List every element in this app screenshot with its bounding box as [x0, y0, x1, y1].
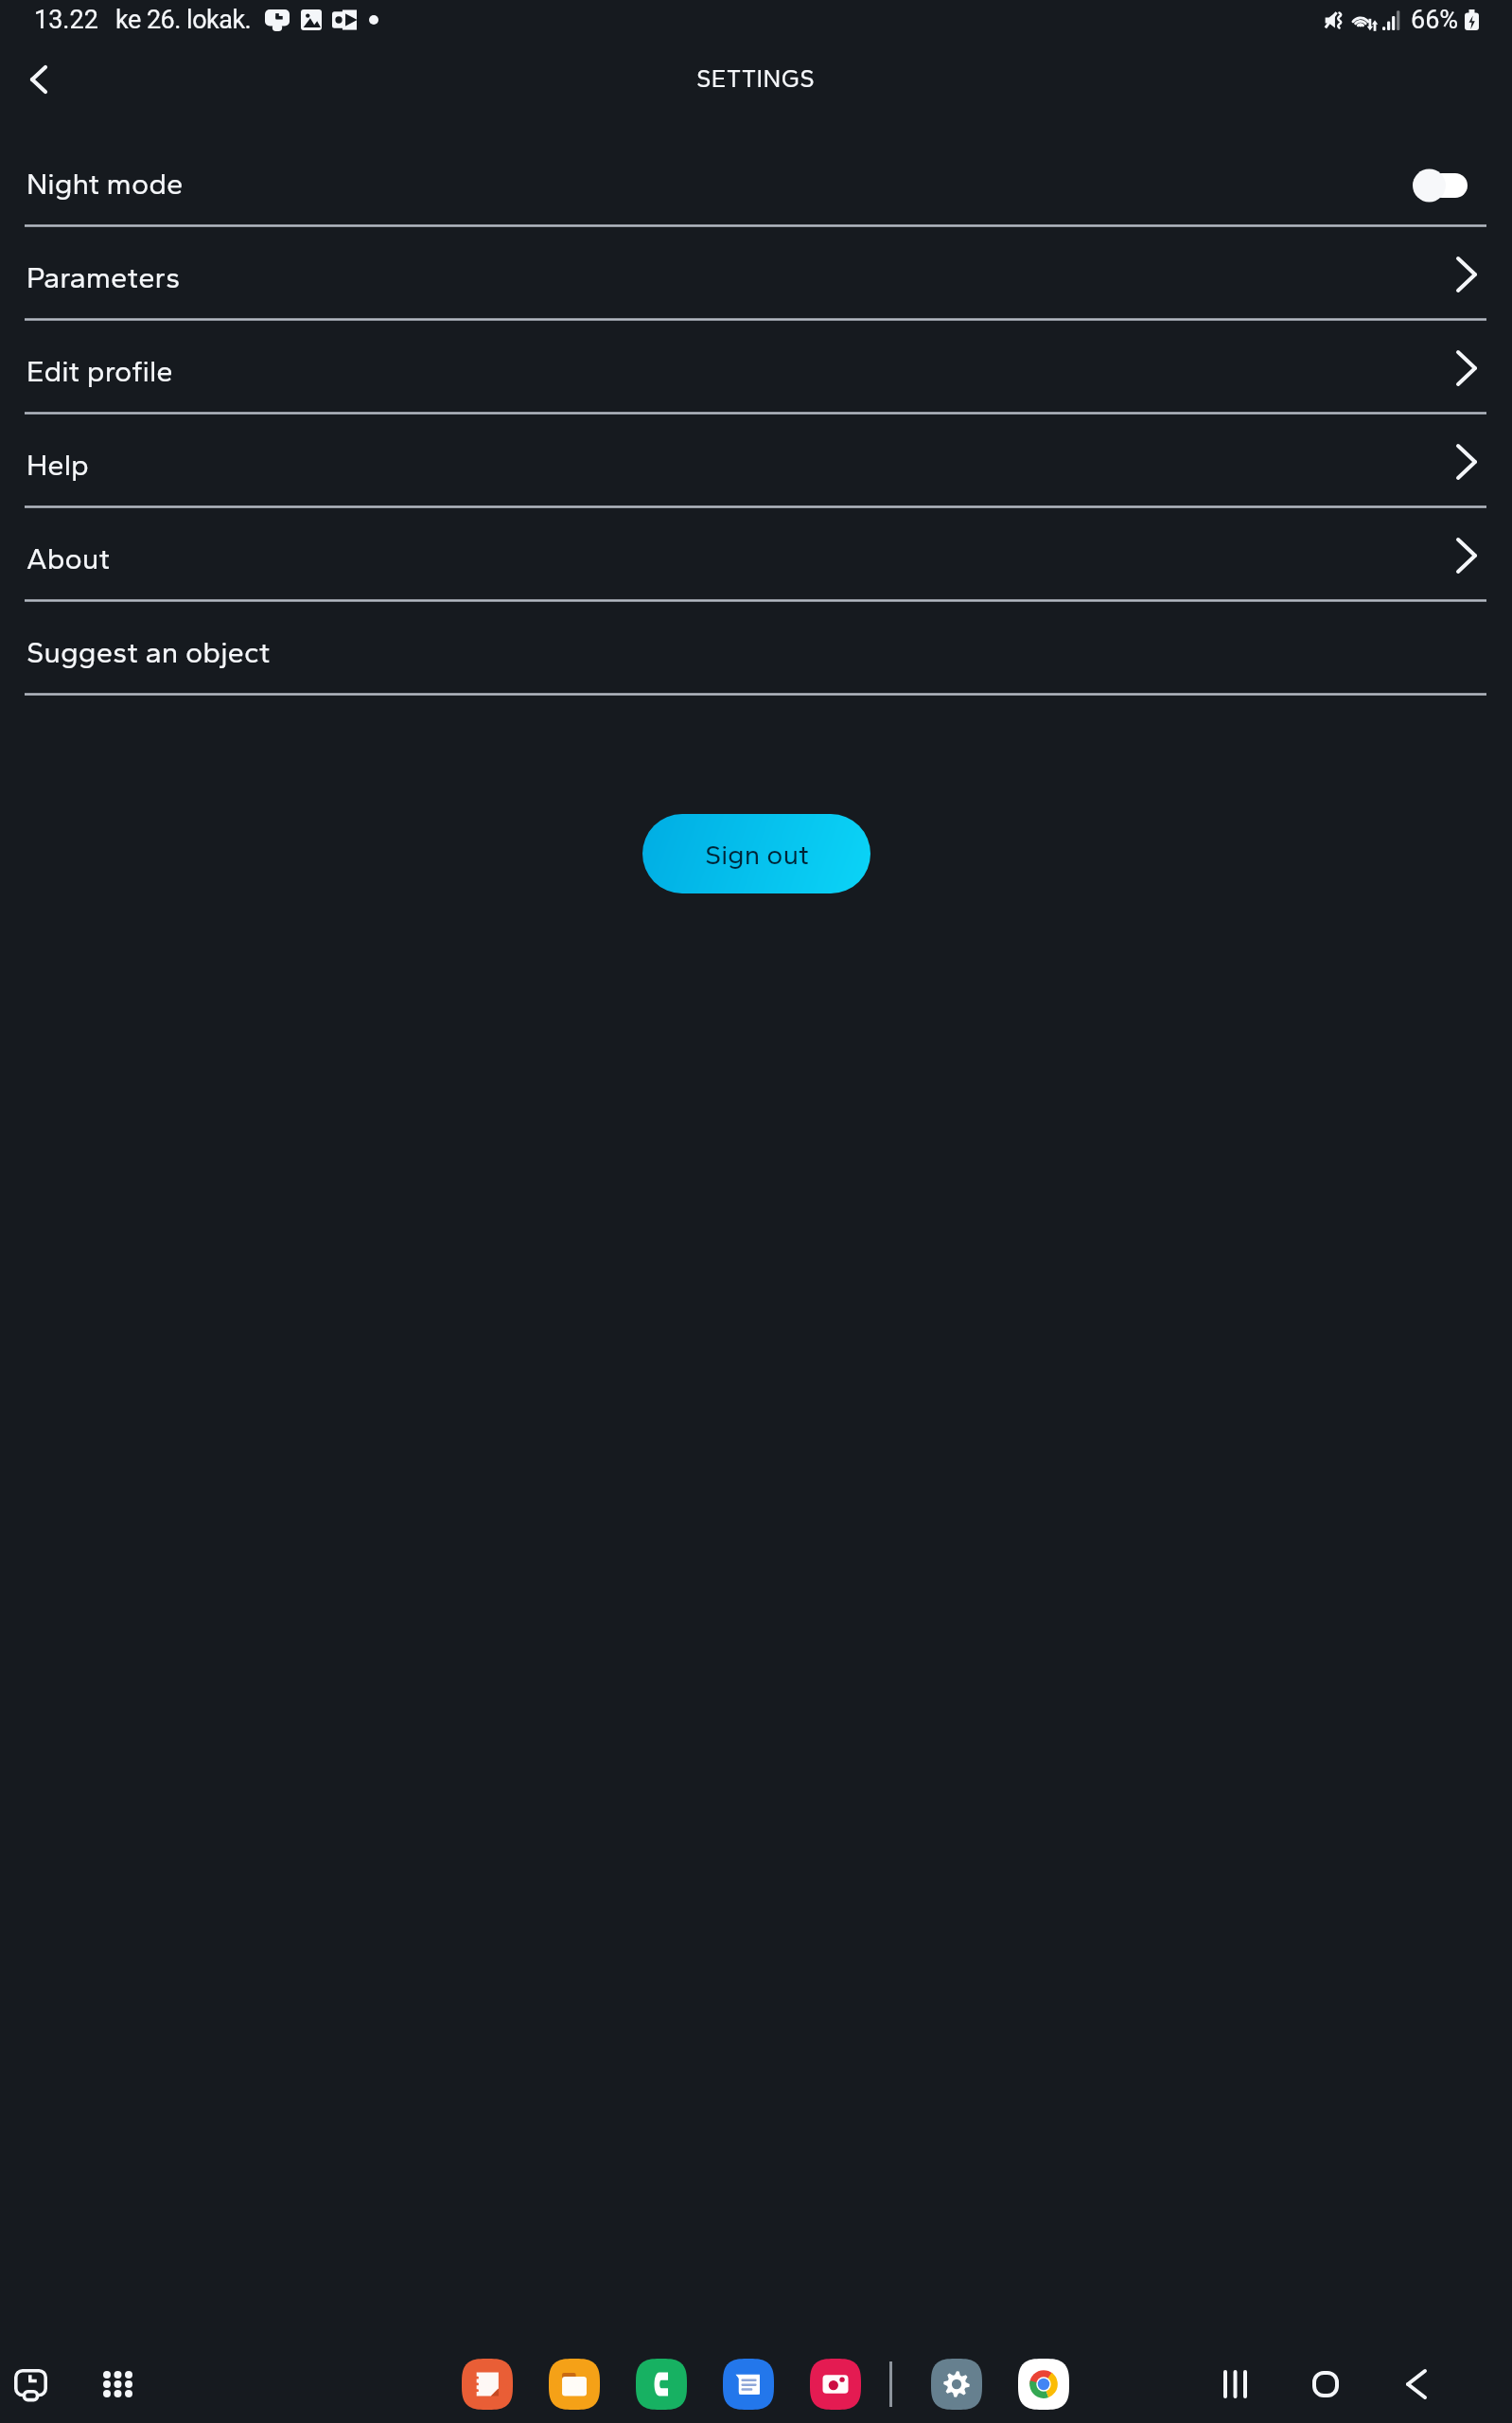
button[interactable]: DeX [4, 2358, 57, 2411]
button[interactable]: Night mode [0, 133, 1512, 224]
button[interactable]: Messages [723, 2359, 774, 2410]
button[interactable]: Chrome [1018, 2359, 1069, 2410]
staticText: Edit profile [26, 354, 173, 389]
button[interactable]: Phone [636, 2359, 687, 2410]
button[interactable]: About [0, 508, 1512, 599]
button[interactable]: Suggest an object [0, 602, 1512, 693]
staticText: Sign out [705, 838, 809, 871]
button[interactable]: Camera [810, 2359, 861, 2410]
staticText: Help [26, 448, 89, 483]
button[interactable]: Night mode [1413, 168, 1468, 203]
staticText: About [26, 541, 111, 576]
button[interactable]: Help [0, 415, 1512, 505]
button[interactable]: Home [1296, 2355, 1355, 2414]
button[interactable]: Parameters [0, 227, 1512, 318]
staticText: ke 26. lokak. [115, 5, 252, 35]
staticText: Suggest an object [26, 635, 271, 670]
button[interactable]: My Files [549, 2359, 600, 2410]
button[interactable]: Back [1387, 2355, 1446, 2414]
staticText: 13.22 [34, 5, 98, 35]
staticText: Parameters [26, 260, 181, 295]
staticText: 66% [1411, 5, 1459, 35]
staticText: Night mode [26, 167, 184, 202]
button[interactable]: Sign out [642, 814, 870, 893]
button[interactable]: Settings [931, 2359, 982, 2410]
button[interactable]: Recents [1205, 2355, 1264, 2414]
button[interactable]: Edit profile [0, 321, 1512, 412]
button[interactable]: Back [9, 50, 68, 109]
button[interactable]: Samsung Notes [462, 2359, 513, 2410]
button[interactable]: Apps [91, 2358, 144, 2411]
staticText: SETTINGS [696, 63, 816, 93]
